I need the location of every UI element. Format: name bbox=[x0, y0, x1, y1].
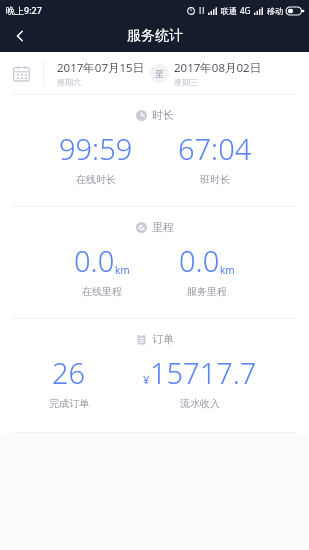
staticText: km bbox=[115, 263, 130, 277]
staticText: 订单 bbox=[152, 332, 174, 346]
staticText: ¥ bbox=[143, 372, 150, 387]
staticText: 时长 bbox=[152, 108, 174, 122]
staticText: 流水收入 bbox=[180, 397, 220, 410]
staticText: 移动 bbox=[267, 6, 283, 16]
button[interactable]: 0.0 bbox=[52, 236, 152, 298]
staticText: 服务统计 bbox=[127, 27, 183, 45]
staticText: 15717.7 bbox=[150, 353, 257, 392]
staticText: 在线时长 bbox=[76, 173, 116, 186]
staticText: 晚上9:27 bbox=[6, 4, 42, 16]
staticText: 联通 bbox=[221, 6, 237, 16]
staticText: 0.0 bbox=[74, 241, 115, 280]
button[interactable]: 67:04 bbox=[155, 124, 275, 186]
button[interactable]: ¥ bbox=[140, 348, 260, 410]
staticText: 26 bbox=[52, 353, 86, 392]
staticText: 星期六 bbox=[57, 77, 81, 87]
button[interactable]: 至 bbox=[150, 64, 169, 83]
staticText: 里程 bbox=[152, 220, 174, 234]
staticText: 0.0 bbox=[179, 241, 220, 280]
staticText: 99:59 bbox=[59, 129, 133, 168]
staticText: 2017年07月15日 bbox=[57, 60, 145, 76]
staticText: 在线里程 bbox=[82, 285, 122, 298]
staticText: 星期三 bbox=[174, 77, 198, 87]
staticText: 班时长 bbox=[200, 173, 230, 186]
button[interactable]: 99:59 bbox=[46, 124, 146, 186]
staticText: 67:04 bbox=[178, 129, 252, 168]
staticText: km bbox=[220, 263, 235, 277]
staticText: 至 bbox=[155, 68, 164, 79]
button[interactable]: Back bbox=[0, 20, 40, 52]
staticText: 2017年08月02日 bbox=[174, 60, 262, 76]
button[interactable]: 0.0 bbox=[147, 236, 267, 298]
button[interactable]: 2017年07月15日 bbox=[0, 52, 309, 94]
staticText: 完成订单 bbox=[49, 397, 89, 410]
button[interactable]: 26 bbox=[19, 348, 119, 410]
staticText: 4G bbox=[240, 5, 251, 16]
staticText: 服务里程 bbox=[187, 285, 227, 298]
